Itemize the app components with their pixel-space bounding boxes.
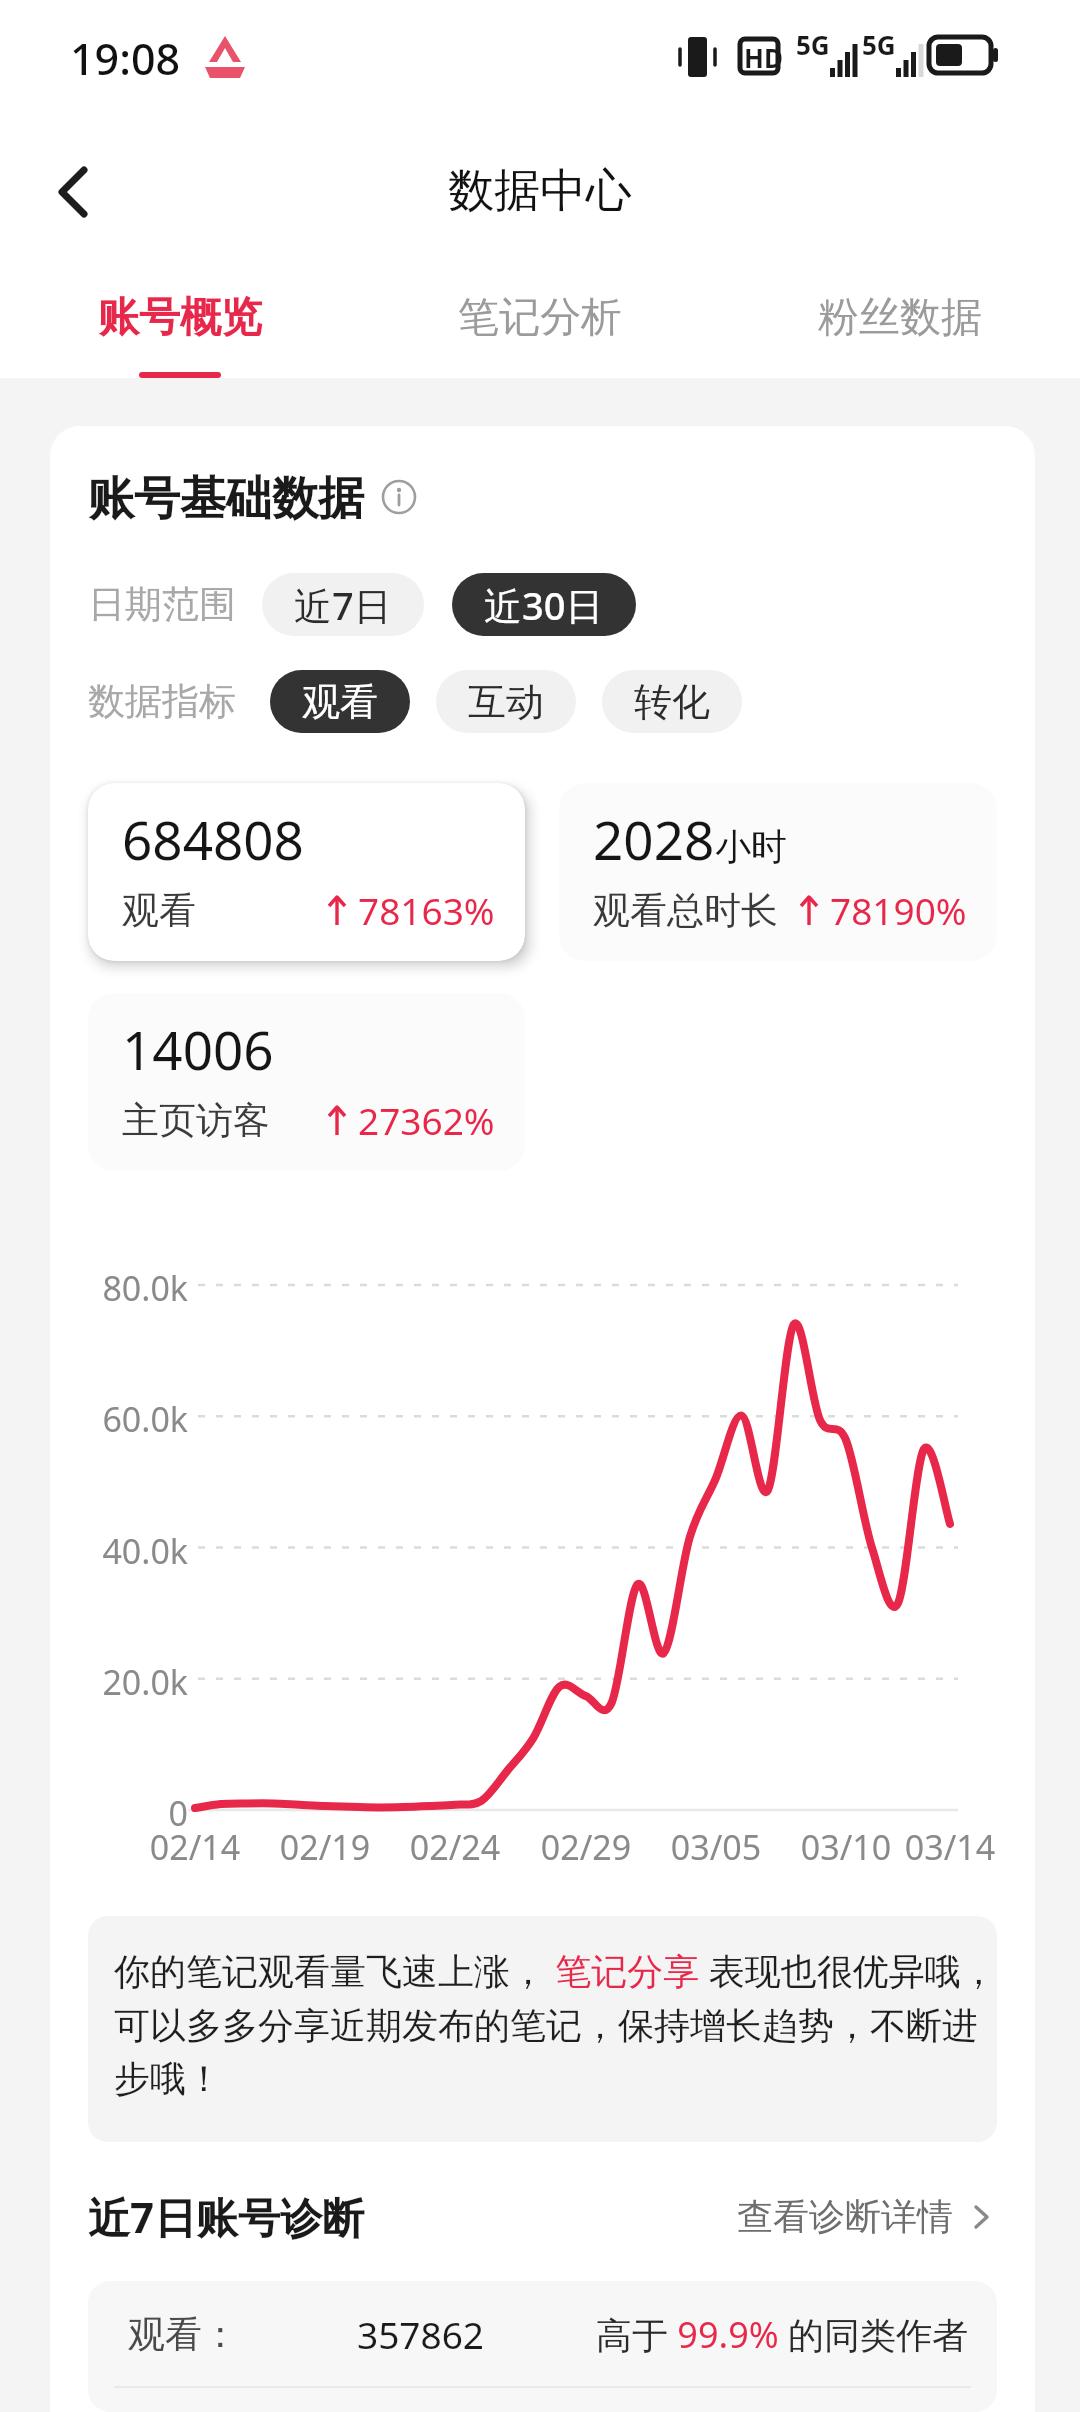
staticText: 03/05 [626,1824,806,1870]
staticText: 78163% [358,885,495,935]
staticText: 观看： [128,2311,239,2358]
staticText: 你的笔记观看量飞速上涨， 笔记分享 表现也很优异哦， 可以多多分享近期发布的笔记… [114,1946,997,2101]
staticText: 5G [862,27,896,62]
staticText: 357862 [357,2309,484,2359]
staticText: 高于 99.9% 的同类作者 [596,2310,969,2359]
staticText: 78190% [830,885,967,935]
button[interactable]: 粉丝数据 [720,260,1080,372]
button[interactable]: 2028 [559,783,997,961]
button[interactable]: 查看诊断详情 [737,2194,997,2239]
staticText: 0 [58,1790,188,1836]
button[interactable]: 14006 [88,993,525,1171]
staticText: 数据指标 [88,678,236,725]
staticText: 粉丝数据 [818,292,982,344]
staticText: 80.0k [58,1265,188,1311]
staticText: 笔记分析 [458,292,622,344]
button[interactable]: 笔记分析 [360,260,720,372]
button[interactable]: Info [382,479,422,519]
button[interactable]: 互动 [436,670,576,733]
button[interactable]: 684808 [88,783,525,961]
button[interactable]: 转化 [602,670,742,733]
staticText: 02/24 [365,1824,545,1870]
staticText: 近7日 [294,579,392,631]
staticText: 684808 [122,803,304,875]
button[interactable]: 账号概览 [0,260,360,378]
button[interactable]: 近30日 [452,573,636,636]
staticText: 03/14 [860,1824,1035,1870]
staticText: 02/19 [235,1824,415,1870]
staticText: 近30日 [484,579,604,631]
staticText: 账号概览 [98,292,262,344]
staticText: 19:08 [70,29,181,88]
staticText: 数据中心 [448,162,632,220]
button[interactable]: Back [28,144,124,240]
staticText: 60.0k [58,1396,188,1442]
staticText: 主页访客 [122,1097,270,1144]
staticText: HD [744,40,783,75]
staticText: 账号基础数据 [88,470,364,528]
button[interactable]: 近7日 [262,573,424,636]
staticText: 5G [796,27,830,62]
staticText: 观看 [302,678,378,726]
staticText: 02/29 [496,1824,676,1870]
staticText: 互动 [468,678,544,726]
staticText: 转化 [634,678,710,726]
staticText: 小时 [715,824,787,869]
button[interactable]: 观看 [270,670,410,733]
staticText: 27362% [358,1095,495,1145]
staticText: 20.0k [58,1659,188,1705]
staticText: 02/14 [105,1824,285,1870]
staticText: 40.0k [58,1528,188,1574]
staticText: 03/10 [756,1824,936,1870]
staticText: 查看诊断详情 [737,2194,953,2239]
staticText: 近7日账号诊断 [88,2188,365,2245]
staticText: 日期范围 [88,581,236,628]
staticText: 14006 [122,1013,274,1085]
staticText: 观看 [122,887,196,934]
staticText: 2028 [593,803,715,875]
staticText: 观看总时长 [593,887,778,934]
